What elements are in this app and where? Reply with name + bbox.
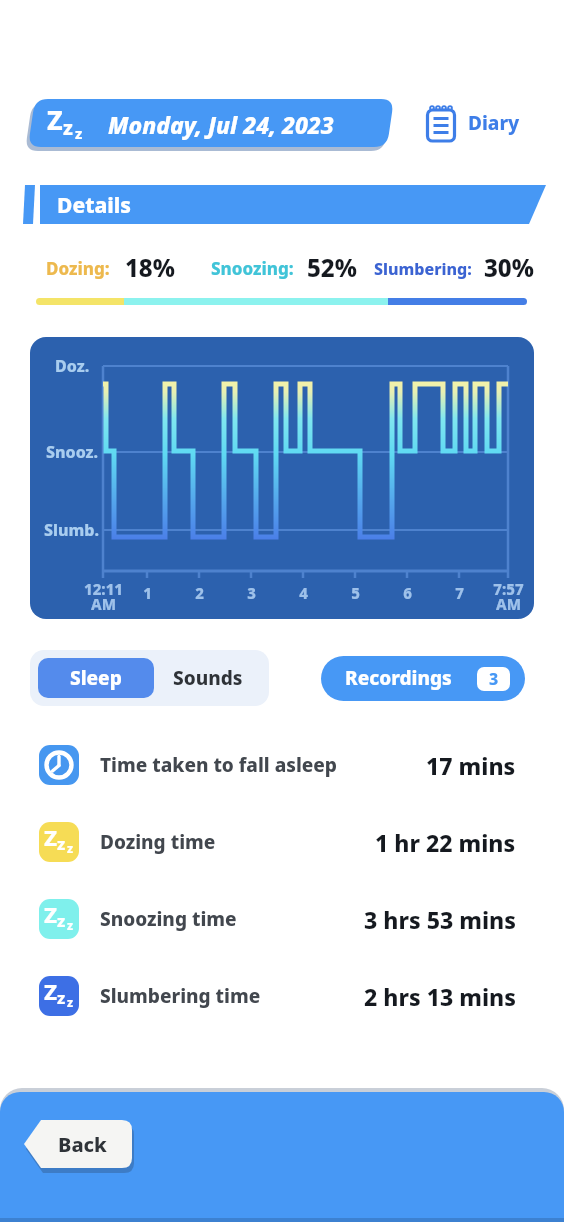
- staticText: Z: [44, 899, 58, 929]
- button[interactable]: Z: [30, 968, 530, 1024]
- staticText: 18%: [125, 251, 175, 284]
- staticText: Slumbering:: [374, 258, 472, 280]
- staticText: Dozing time: [100, 829, 216, 855]
- staticText: 3 hrs 53 mins: [364, 904, 516, 935]
- staticText: Details: [57, 191, 132, 220]
- button[interactable]: Time taken to fall asleep: [30, 737, 530, 793]
- staticText: 5: [351, 583, 360, 603]
- staticText: 1 hr 22 mins: [375, 827, 516, 858]
- staticText: 12:11: [84, 579, 123, 599]
- staticText: 30%: [484, 251, 534, 284]
- staticText: z: [57, 832, 66, 854]
- staticText: Sleep: [70, 665, 122, 691]
- staticText: Snoozing:: [211, 257, 294, 280]
- staticText: 17 mins: [426, 750, 516, 781]
- staticText: Snooz.: [46, 441, 99, 463]
- button[interactable]: Z: [30, 891, 530, 947]
- button[interactable]: Z: [25, 98, 397, 152]
- staticText: Dozing:: [46, 257, 110, 280]
- button[interactable]: Recordings: [321, 656, 525, 701]
- staticText: Z: [44, 976, 58, 1006]
- button[interactable]: Back: [24, 1120, 136, 1174]
- button[interactable]: Sleep: [38, 658, 154, 698]
- staticText: z: [67, 994, 74, 1010]
- staticText: z: [67, 840, 74, 856]
- staticText: 2: [195, 583, 204, 603]
- staticText: Sounds: [173, 665, 243, 691]
- button[interactable]: Z: [30, 814, 530, 870]
- staticText: Snoozing time: [100, 906, 237, 932]
- staticText: z: [75, 123, 83, 143]
- staticText: 4: [299, 583, 308, 603]
- button[interactable]: Sounds: [154, 658, 261, 698]
- staticText: Slumbering time: [100, 983, 261, 1009]
- staticText: AM: [91, 594, 116, 614]
- staticText: Diary: [468, 110, 520, 136]
- button[interactable]: Diary: [426, 103, 520, 143]
- staticText: 3: [247, 583, 256, 603]
- staticText: Recordings: [345, 665, 452, 691]
- staticText: z: [63, 114, 73, 141]
- staticText: Back: [58, 1131, 107, 1158]
- staticText: 7:57: [493, 579, 524, 599]
- staticText: z: [57, 986, 66, 1008]
- staticText: 2 hrs 13 mins: [364, 981, 516, 1012]
- staticText: 7: [455, 583, 464, 603]
- staticText: z: [57, 909, 66, 931]
- staticText: 6: [403, 583, 412, 603]
- staticText: Doz.: [55, 355, 90, 377]
- staticText: Monday, Jul 24, 2023: [108, 109, 334, 140]
- staticText: 1: [143, 583, 152, 603]
- staticText: Time taken to fall asleep: [100, 752, 337, 778]
- staticText: z: [67, 917, 74, 933]
- staticText: Slumb.: [44, 519, 100, 541]
- staticText: AM: [496, 594, 521, 614]
- staticText: Z: [47, 102, 63, 138]
- staticText: 52%: [307, 251, 357, 284]
- staticText: 3: [489, 668, 499, 690]
- staticText: Z: [44, 822, 58, 852]
